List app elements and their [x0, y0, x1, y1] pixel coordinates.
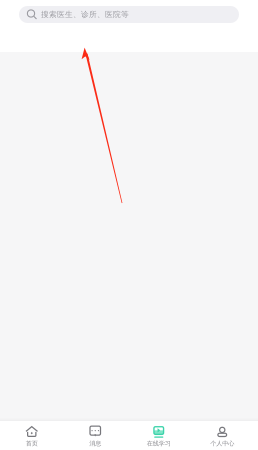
button[interactable]: 消息	[63, 421, 127, 450]
staticText: 首页	[26, 440, 38, 447]
button[interactable]: 个人中心	[190, 421, 254, 450]
button[interactable]: 在线学习	[127, 421, 190, 450]
staticText: 在线学习	[147, 440, 171, 447]
staticText: 个人中心	[210, 440, 234, 447]
staticText: 消息	[89, 440, 101, 447]
staticText: 搜索医生、诊所、医院等	[41, 10, 129, 19]
button[interactable]: 首页	[0, 421, 63, 450]
button[interactable]: 搜索医生、诊所、医院等	[19, 6, 239, 23]
